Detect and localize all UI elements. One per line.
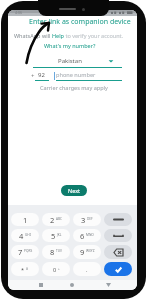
button[interactable]: 1 [11,213,39,226]
button[interactable]: Help [52,32,64,39]
button[interactable]: 2 [42,213,70,226]
button[interactable]: 4 [11,229,39,242]
button[interactable]: What's my number? [44,42,96,49]
staticText: Enter link as companion device [29,17,131,27]
staticText: 4 [19,231,24,241]
staticText: 1 [23,215,28,225]
button[interactable]: * [11,262,39,276]
staticText: WXYZ [86,249,95,253]
staticText: 5 [51,231,56,241]
staticText: 7 [18,247,23,257]
staticText: 6 [80,231,85,241]
staticText: Pakistan [58,57,82,65]
button[interactable]: Backspace [104,213,132,226]
staticText: 0 [53,266,57,273]
button[interactable]: Backspace [104,245,132,259]
staticText: phone number [56,71,96,79]
staticText: . [86,266,88,273]
button[interactable]: 0 [42,262,70,276]
button[interactable]: Back [106,283,111,287]
button[interactable]: Submit [104,262,132,276]
staticText: 2 [50,215,55,225]
staticText: 3 [81,215,86,225]
button[interactable]: Space [104,229,132,242]
button[interactable]: Home [70,283,74,287]
button[interactable]: 5 [42,229,70,242]
staticText: TUV [56,249,63,253]
staticText: + [58,267,60,271]
staticText: WhatsApp will [14,32,52,39]
staticText: 9 [80,247,85,257]
staticText: Next [68,187,81,194]
staticText: MNO [86,233,94,237]
staticText: * [21,266,25,273]
button[interactable]: 8 [42,245,70,259]
staticText: 4:06 [15,10,23,15]
button[interactable]: Next [61,185,87,196]
staticText: 92 [38,71,45,79]
staticText: Carrier charges may apply [40,84,108,91]
staticText: 8 [50,247,55,257]
button[interactable]: Pakistan [33,55,122,67]
staticText: # [26,267,29,271]
button[interactable]: 6 [73,229,101,242]
staticText: DEF [87,217,93,221]
staticText: + [31,72,35,80]
staticText: GHI [25,233,31,237]
staticText: PQRS [24,249,33,253]
button[interactable]: 3 [73,213,101,226]
staticText: to verify your account. [64,32,124,39]
button[interactable]: 7 [11,245,39,259]
staticText: ABC [56,217,63,221]
button[interactable]: . [73,262,101,276]
staticText: JKL [57,233,62,237]
button[interactable]: 9 [73,245,101,259]
